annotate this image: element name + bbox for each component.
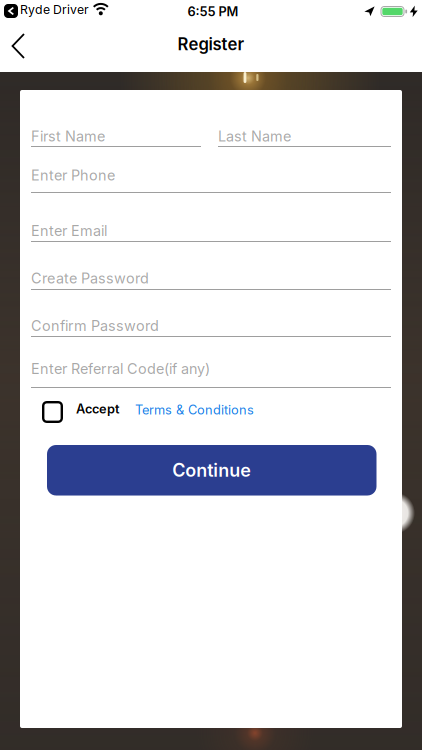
staticText: Enter Phone: [31, 166, 115, 184]
staticText: Terms & Conditions: [135, 402, 254, 417]
staticText: Ryde Driver: [20, 2, 89, 17]
button[interactable]: Terms & Conditions: [135, 402, 254, 417]
staticText: Last Name: [218, 127, 291, 145]
staticText: 6:55 PM: [187, 4, 238, 19]
staticText: Register: [177, 34, 244, 54]
staticText: Confirm Password: [31, 317, 159, 334]
staticText: First Name: [31, 127, 105, 145]
staticText: Create Password: [31, 269, 149, 287]
staticText: Enter Referral Code(if any): [31, 360, 210, 377]
staticText: Continue: [172, 459, 251, 481]
staticText: Enter Email: [31, 222, 107, 239]
staticText: Accept: [76, 401, 120, 416]
button[interactable]: Back: [10, 32, 28, 60]
button[interactable]: Accept: [42, 401, 63, 423]
button[interactable]: Continue: [47, 445, 376, 495]
